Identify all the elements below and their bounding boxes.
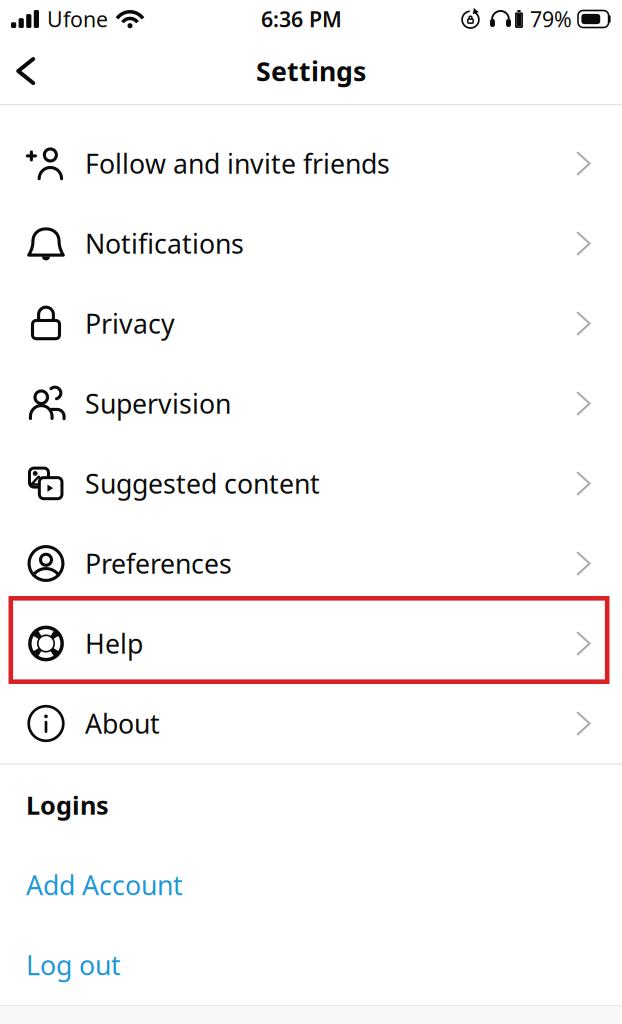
staticText: Help — [85, 626, 143, 661]
staticText: Suggested content — [85, 466, 320, 501]
staticText: About — [85, 706, 160, 741]
staticText: Settings — [256, 53, 366, 89]
staticText: Logins — [26, 788, 109, 822]
button[interactable]: Back — [0, 41, 59, 101]
button[interactable]: Log out — [0, 925, 622, 1005]
staticText: 79% — [530, 5, 572, 33]
button[interactable]: Preferences — [0, 523, 622, 603]
staticText: Privacy — [85, 306, 175, 341]
staticText: Notifications — [85, 226, 244, 261]
staticText: Preferences — [85, 546, 232, 581]
button[interactable]: Privacy — [0, 283, 622, 363]
button[interactable]: Follow and invite friends — [0, 123, 622, 203]
staticText: Add Account — [26, 867, 183, 903]
staticText: 6:36 PM — [261, 5, 342, 33]
button[interactable]: Supervision — [0, 363, 622, 443]
staticText: Supervision — [85, 386, 231, 421]
button[interactable]: Help — [0, 603, 622, 683]
button[interactable]: Add Account — [0, 845, 622, 925]
staticText: Follow and invite friends — [85, 146, 390, 181]
button[interactable]: Notifications — [0, 203, 622, 283]
staticText: Log out — [26, 947, 121, 983]
staticText: Ufone — [47, 5, 108, 33]
button[interactable]: Suggested content — [0, 443, 622, 523]
button[interactable]: About — [0, 683, 622, 763]
